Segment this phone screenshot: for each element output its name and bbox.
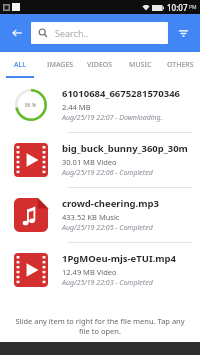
staticText: 12.49 MB Video	[62, 267, 117, 277]
staticText: 433.52 KB Music	[62, 212, 120, 222]
button[interactable]: Search..	[31, 22, 168, 44]
button[interactable]: Back	[6, 22, 28, 44]
staticText: 61010684_6675281570346	[62, 87, 181, 100]
staticText: 30.01 MB Video	[62, 157, 117, 167]
staticText: PM	[189, 4, 197, 11]
staticText: big_buck_bunny_360p_30m	[62, 142, 188, 155]
staticText: Aug/25/19 22:05 - Completed	[62, 223, 153, 233]
button[interactable]: IMAGES	[40, 52, 80, 78]
staticText: IMAGES	[47, 60, 74, 70]
button[interactable]: Filter	[172, 22, 194, 44]
staticText: 10:07	[167, 2, 188, 13]
staticText: Aug/25/19 22:06 - Completed	[62, 168, 153, 178]
button[interactable]: 86 %	[0, 78, 200, 132]
staticText: 1PgMOeu-mjs-eTUI.mp4	[62, 252, 177, 265]
button[interactable]: ALL	[0, 52, 40, 78]
staticText: Slide any item to right for the file men…	[14, 316, 186, 336]
button[interactable]: MUSIC	[120, 52, 160, 78]
staticText: Aug/25/19 22:03 - Completed	[62, 278, 153, 288]
button[interactable]: big_buck_bunny_360p_30m	[0, 133, 200, 187]
button[interactable]: VIDEOS	[80, 52, 120, 78]
staticText: ALL	[14, 60, 27, 70]
staticText: 2.44 MB	[62, 102, 91, 112]
staticText: MUSIC	[129, 60, 152, 70]
staticText: crowd-cheering.mp3	[62, 197, 159, 210]
staticText: Aug/25/19 22:07 - Downloading.	[62, 113, 163, 123]
staticText: OTHERS	[167, 60, 194, 70]
staticText: VIDEOS	[87, 60, 113, 70]
button[interactable]: OTHERS	[160, 52, 200, 78]
button[interactable]: crowd-cheering.mp3	[0, 188, 200, 242]
staticText: 86 %	[25, 102, 37, 109]
staticText: Search..	[55, 27, 89, 39]
button[interactable]: 1PgMOeu-mjs-eTUI.mp4	[0, 243, 200, 297]
